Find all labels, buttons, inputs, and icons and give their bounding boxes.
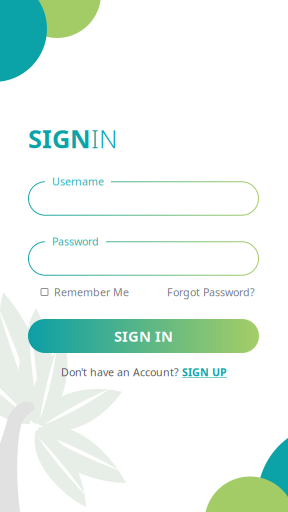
staticText: Username bbox=[52, 174, 104, 188]
button[interactable]: SIGN IN bbox=[28, 319, 259, 353]
button[interactable]: Remember Me bbox=[41, 285, 129, 299]
staticText: IN bbox=[91, 122, 117, 155]
staticText: Forgot Password? bbox=[167, 285, 255, 299]
staticText: Don't have an Account? bbox=[61, 365, 179, 379]
staticText: Password bbox=[52, 234, 99, 248]
button[interactable]: Forgot Password? bbox=[167, 285, 255, 299]
staticText: SIGN UP bbox=[182, 365, 227, 379]
staticText: Remember Me bbox=[54, 285, 129, 299]
staticText: SIGN IN bbox=[114, 326, 173, 346]
staticText: SIGN bbox=[28, 122, 91, 155]
button[interactable]: SIGN UP bbox=[182, 365, 227, 379]
